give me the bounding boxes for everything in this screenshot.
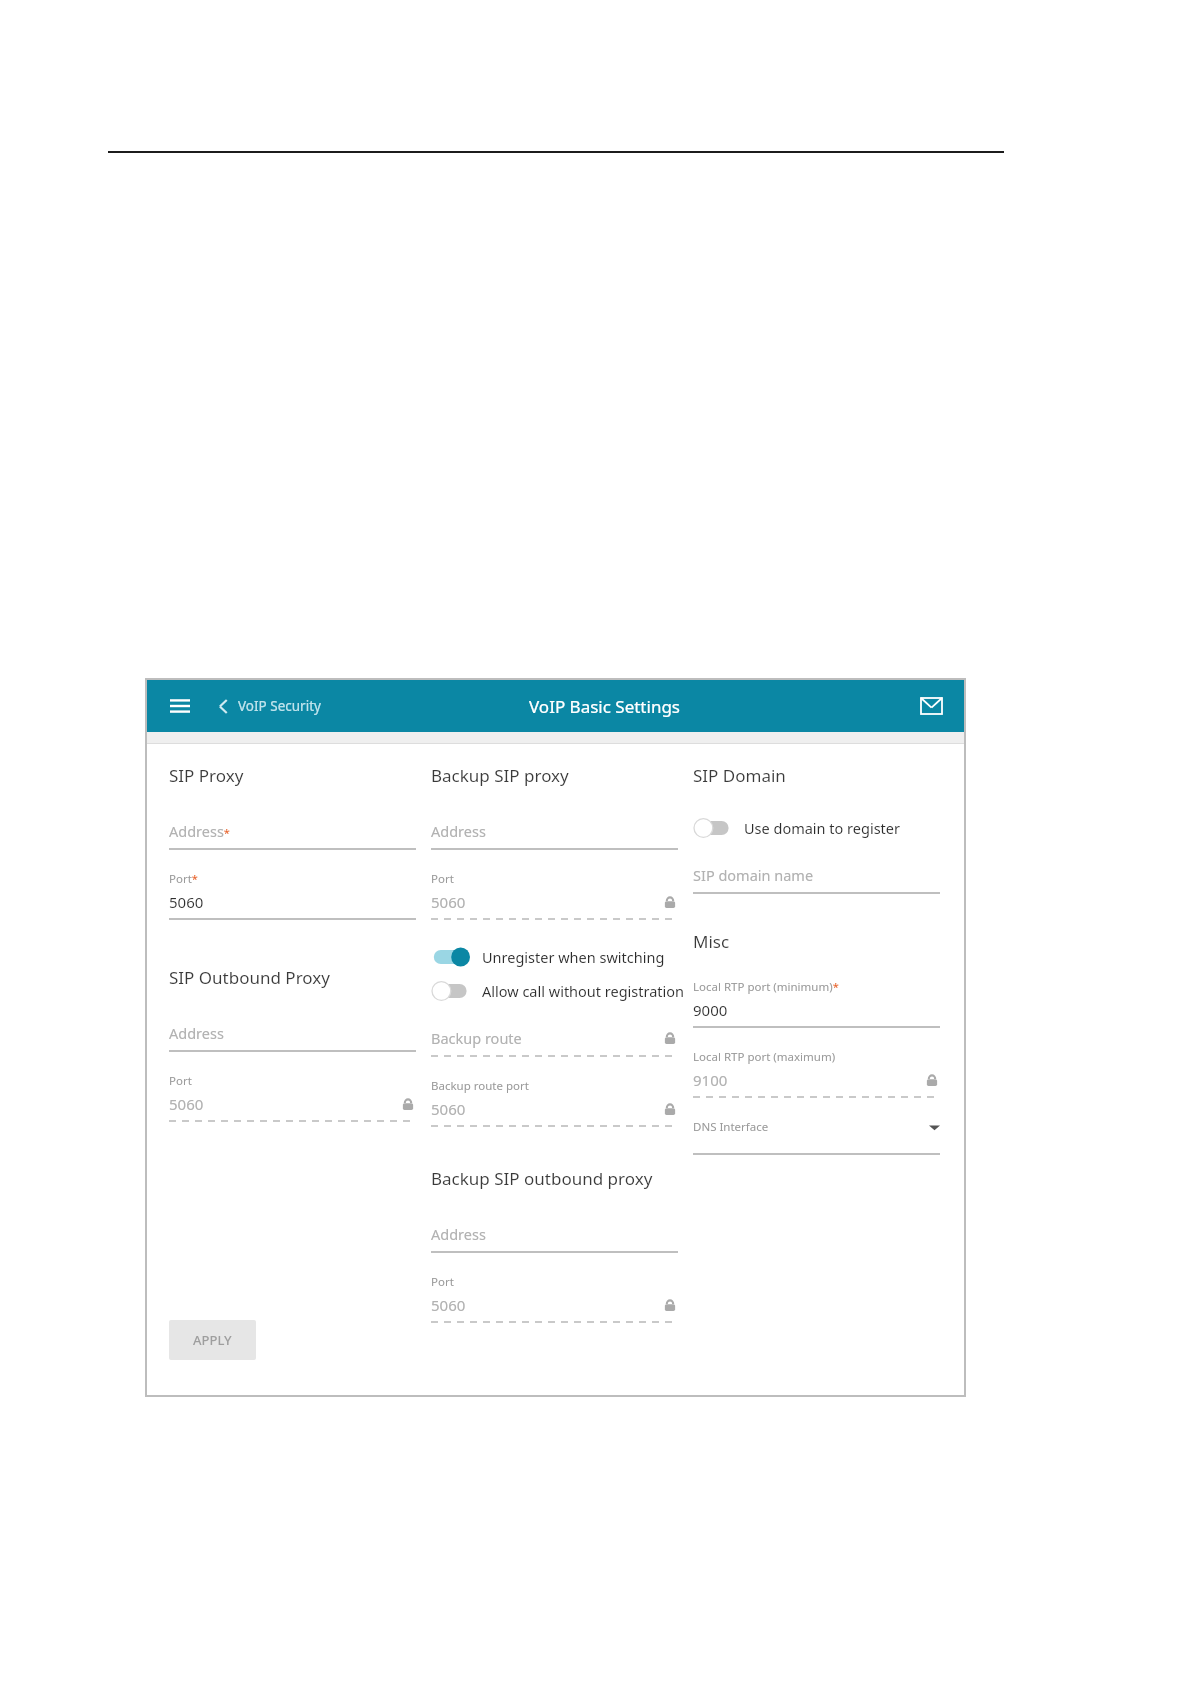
staticText: Local RTP port (maximum) <box>693 1049 836 1065</box>
staticText: Address* <box>169 821 230 841</box>
staticText: Address <box>431 821 486 841</box>
staticText: Backup route port <box>431 1078 529 1094</box>
button[interactable]: Address <box>169 1023 416 1052</box>
staticText: VoIP Basic Settings <box>529 695 680 718</box>
staticText: SIP Domain <box>693 764 786 787</box>
button[interactable]: Backup route port <box>431 1078 678 1127</box>
staticText: Port <box>169 1073 192 1089</box>
staticText: VoIP Security <box>238 697 321 715</box>
button[interactable]: Use domain to register <box>693 813 901 843</box>
button[interactable]: Address <box>431 1224 678 1253</box>
button[interactable]: VoIP Security <box>213 693 325 719</box>
staticText: 5060 <box>431 892 466 912</box>
button[interactable]: APPLY <box>169 1320 256 1360</box>
staticText: 5060 <box>169 892 204 912</box>
button[interactable]: Messages <box>914 689 948 723</box>
button[interactable]: DNS Interface <box>693 1119 940 1155</box>
button[interactable]: Menu <box>163 689 197 723</box>
button[interactable]: Port <box>431 1274 678 1323</box>
staticText: Port <box>431 871 454 887</box>
staticText: Port* <box>169 871 198 887</box>
button[interactable]: Port* <box>169 871 416 920</box>
button[interactable]: Port <box>431 871 678 920</box>
staticText: Backup SIP outbound proxy <box>431 1167 653 1190</box>
staticText: Backup route <box>431 1028 522 1048</box>
staticText: Address <box>431 1224 486 1244</box>
button[interactable]: Allow call without registration <box>431 976 685 1006</box>
button[interactable]: Local RTP port (minimum)* <box>693 979 940 1028</box>
staticText: Allow call without registration <box>482 981 685 1001</box>
staticText: 9100 <box>693 1070 728 1090</box>
staticText: 5060 <box>431 1099 466 1119</box>
staticText: Use domain to register <box>744 818 901 838</box>
staticText: DNS Interface <box>693 1119 769 1135</box>
staticText: Port <box>431 1274 454 1290</box>
staticText: SIP Outbound Proxy <box>169 966 330 989</box>
staticText: 5060 <box>431 1295 466 1315</box>
staticText: 5060 <box>169 1094 204 1114</box>
staticText: Misc <box>693 930 730 953</box>
button[interactable]: Unregister when switching <box>431 942 665 972</box>
staticText: Address <box>169 1023 224 1043</box>
staticText: APPLY <box>193 1331 232 1349</box>
button[interactable]: SIP domain name <box>693 865 940 894</box>
button[interactable]: Port <box>169 1073 416 1122</box>
staticText: Backup SIP proxy <box>431 764 569 787</box>
button[interactable]: Local RTP port (maximum) <box>693 1049 940 1098</box>
button[interactable]: Address <box>431 821 678 850</box>
button[interactable]: Backup route <box>431 1028 678 1057</box>
staticText: Unregister when switching <box>482 947 665 967</box>
staticText: Local RTP port (minimum)* <box>693 979 839 995</box>
staticText: SIP domain name <box>693 865 814 885</box>
staticText: 9000 <box>693 1000 728 1020</box>
staticText: SIP Proxy <box>169 764 244 787</box>
button[interactable]: Address* <box>169 821 416 850</box>
